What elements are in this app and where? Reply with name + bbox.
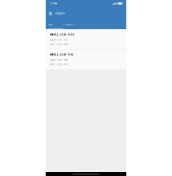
staticText: History [55, 12, 65, 15]
staticText: Single-Core: 1427 [49, 39, 67, 41]
staticText: Multi-Core: 4411 [49, 63, 67, 66]
staticText: Multi-Core: 5476 [49, 43, 67, 46]
staticText: 11:09 [49, 2, 54, 5]
staticText: COMPUTE [63, 23, 74, 26]
button[interactable]: COMPUTE [63, 20, 83, 29]
staticText: March 3, 2024 11:09 [49, 33, 74, 36]
button[interactable]: CPU [48, 20, 63, 29]
staticText: March 3, 2024 11:10 [49, 53, 73, 56]
button[interactable]: Menu [49, 10, 52, 16]
staticText: CPU [48, 23, 53, 26]
staticText: Single-Core: 1395 [49, 59, 67, 61]
button[interactable]: March 3, 2024 11:10 [46, 50, 126, 69]
button[interactable]: March 3, 2024 11:09 [46, 29, 126, 49]
